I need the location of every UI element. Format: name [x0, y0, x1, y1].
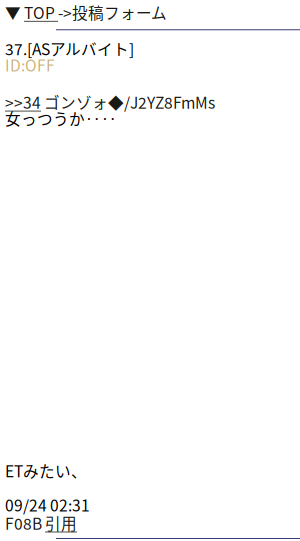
staticText: ETみたい、	[5, 462, 87, 478]
staticText: 09/24 02:31	[5, 496, 90, 513]
staticText: ID:OFF	[5, 56, 55, 73]
staticText: >>34 ゴンゾォ◆/J2YZ8FmMs	[5, 94, 215, 110]
button[interactable]: ▼ TOP ->投稿フォーム	[0, 4, 167, 20]
staticText: 女っつうか‥‥	[5, 110, 117, 126]
staticText: 37.[ASアルバイト]	[5, 40, 134, 57]
staticText: F08B 引用	[5, 515, 77, 531]
staticText: ▼ TOP ->投稿フォーム	[5, 4, 167, 20]
